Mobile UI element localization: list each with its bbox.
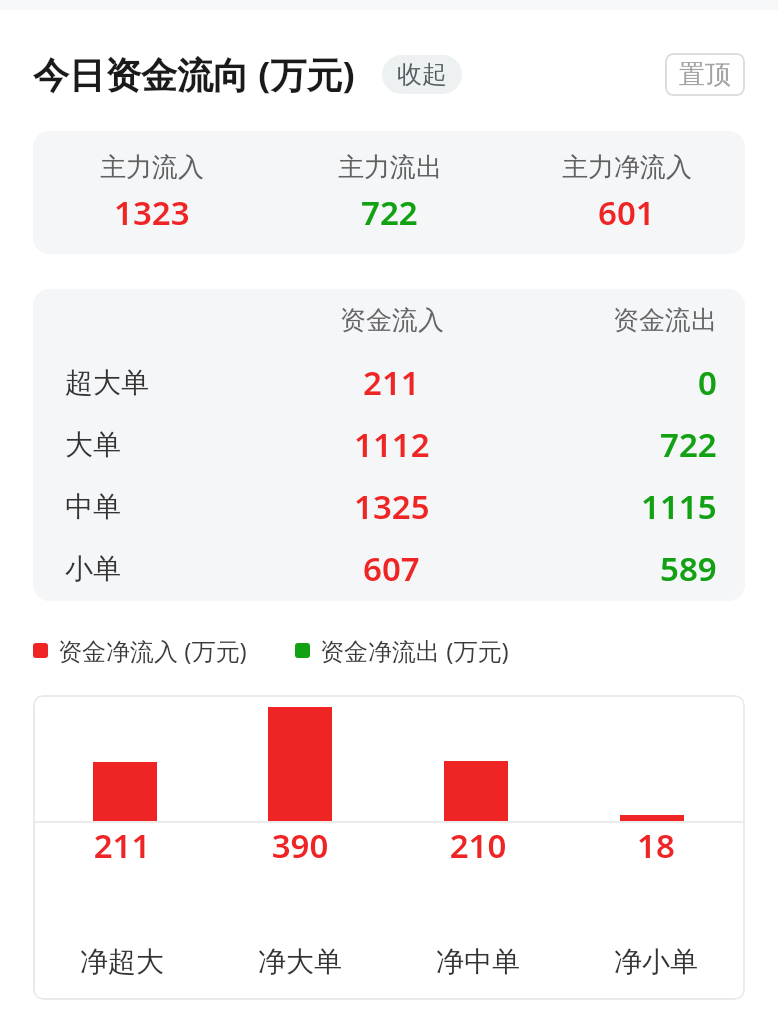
staticText: 722 xyxy=(660,422,717,467)
staticText: 1115 xyxy=(641,484,717,529)
button[interactable]: 置顶 xyxy=(665,53,745,96)
staticText: 0 xyxy=(698,360,717,405)
staticText: 211 xyxy=(33,823,211,868)
staticText: 主力流出 xyxy=(338,151,442,184)
staticText: 1325 xyxy=(354,484,430,529)
staticText: 净小单 xyxy=(567,944,745,979)
staticText: 1112 xyxy=(354,422,430,467)
staticText: 资金流入 xyxy=(340,304,444,337)
staticText: 210 xyxy=(389,823,567,868)
staticText: 390 xyxy=(211,823,389,868)
staticText: 净大单 xyxy=(211,944,389,979)
staticText: 722 xyxy=(361,190,418,235)
staticText: 小单 xyxy=(65,551,121,586)
staticText: 资金流出 xyxy=(613,304,717,337)
staticText: 资金净流出 (万元) xyxy=(320,634,509,667)
staticText: 净中单 xyxy=(389,944,567,979)
staticText: 1323 xyxy=(114,190,190,235)
staticText: 18 xyxy=(567,823,745,868)
staticText: 211 xyxy=(363,360,420,405)
staticText: 大单 xyxy=(65,427,121,462)
staticText: 今日资金流向 (万元) xyxy=(33,50,355,99)
staticText: 589 xyxy=(660,546,717,591)
staticText: 净超大 xyxy=(33,944,211,979)
staticText: 收起 xyxy=(397,59,447,90)
staticText: 主力净流入 xyxy=(562,151,692,184)
staticText: 607 xyxy=(363,546,420,591)
button[interactable]: 收起 xyxy=(382,55,462,94)
staticText: 超大单 xyxy=(65,365,149,400)
staticText: 中单 xyxy=(65,489,121,524)
staticText: 置顶 xyxy=(679,58,731,91)
staticText: 601 xyxy=(598,190,655,235)
staticText: 主力流入 xyxy=(100,151,204,184)
staticText: 资金净流入 (万元) xyxy=(58,634,247,667)
